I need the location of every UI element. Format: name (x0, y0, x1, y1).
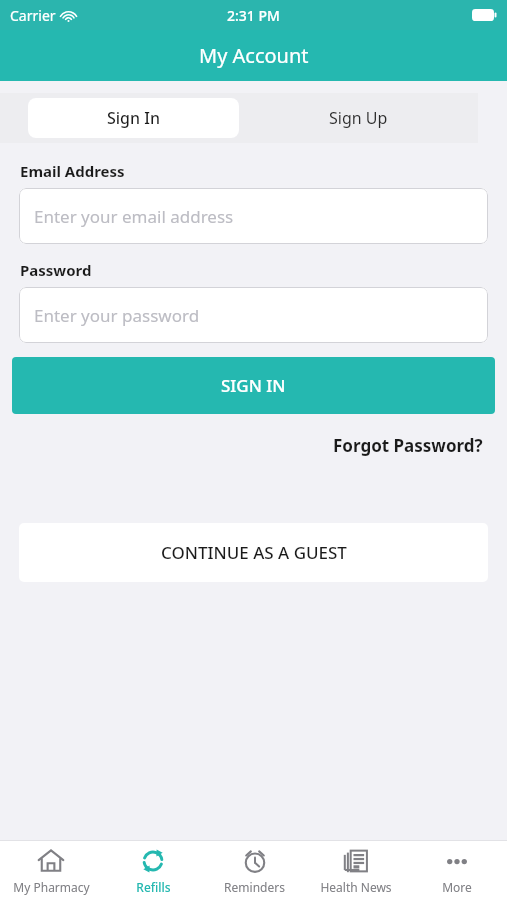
staticText: Email Address (20, 161, 125, 181)
staticText: My Pharmacy (13, 879, 90, 895)
button[interactable]: Reminders (204, 841, 305, 900)
button[interactable]: Enter your email address (19, 188, 488, 244)
staticText: Enter your email address (34, 205, 234, 228)
button[interactable]: Forgot Password? (329, 430, 487, 461)
button[interactable]: More (406, 841, 507, 900)
button[interactable]: Sign In (28, 98, 239, 138)
staticText: Forgot Password? (333, 434, 483, 457)
staticText: SIGN IN (221, 374, 286, 397)
button[interactable]: My Pharmacy (0, 841, 102, 900)
staticText: Carrier (10, 6, 56, 25)
button[interactable]: SIGN IN (12, 357, 495, 414)
button[interactable]: Refills (102, 841, 204, 900)
staticText: Refills (136, 879, 171, 895)
button[interactable]: Enter your password (19, 287, 488, 343)
staticText: My Account (199, 42, 309, 69)
staticText: More (442, 879, 472, 895)
staticText: Enter your password (34, 304, 200, 327)
button[interactable]: Health News (305, 841, 406, 900)
staticText: 2:31 PM (227, 6, 280, 25)
staticText: Sign In (107, 107, 160, 129)
staticText: Password (20, 260, 92, 280)
button[interactable]: Sign Up (239, 93, 478, 143)
staticText: CONTINUE AS A GUEST (161, 541, 347, 564)
button[interactable]: CONTINUE AS A GUEST (19, 523, 488, 582)
staticText: Sign Up (329, 107, 388, 129)
staticText: Health News (320, 879, 392, 895)
staticText: Reminders (224, 879, 285, 895)
